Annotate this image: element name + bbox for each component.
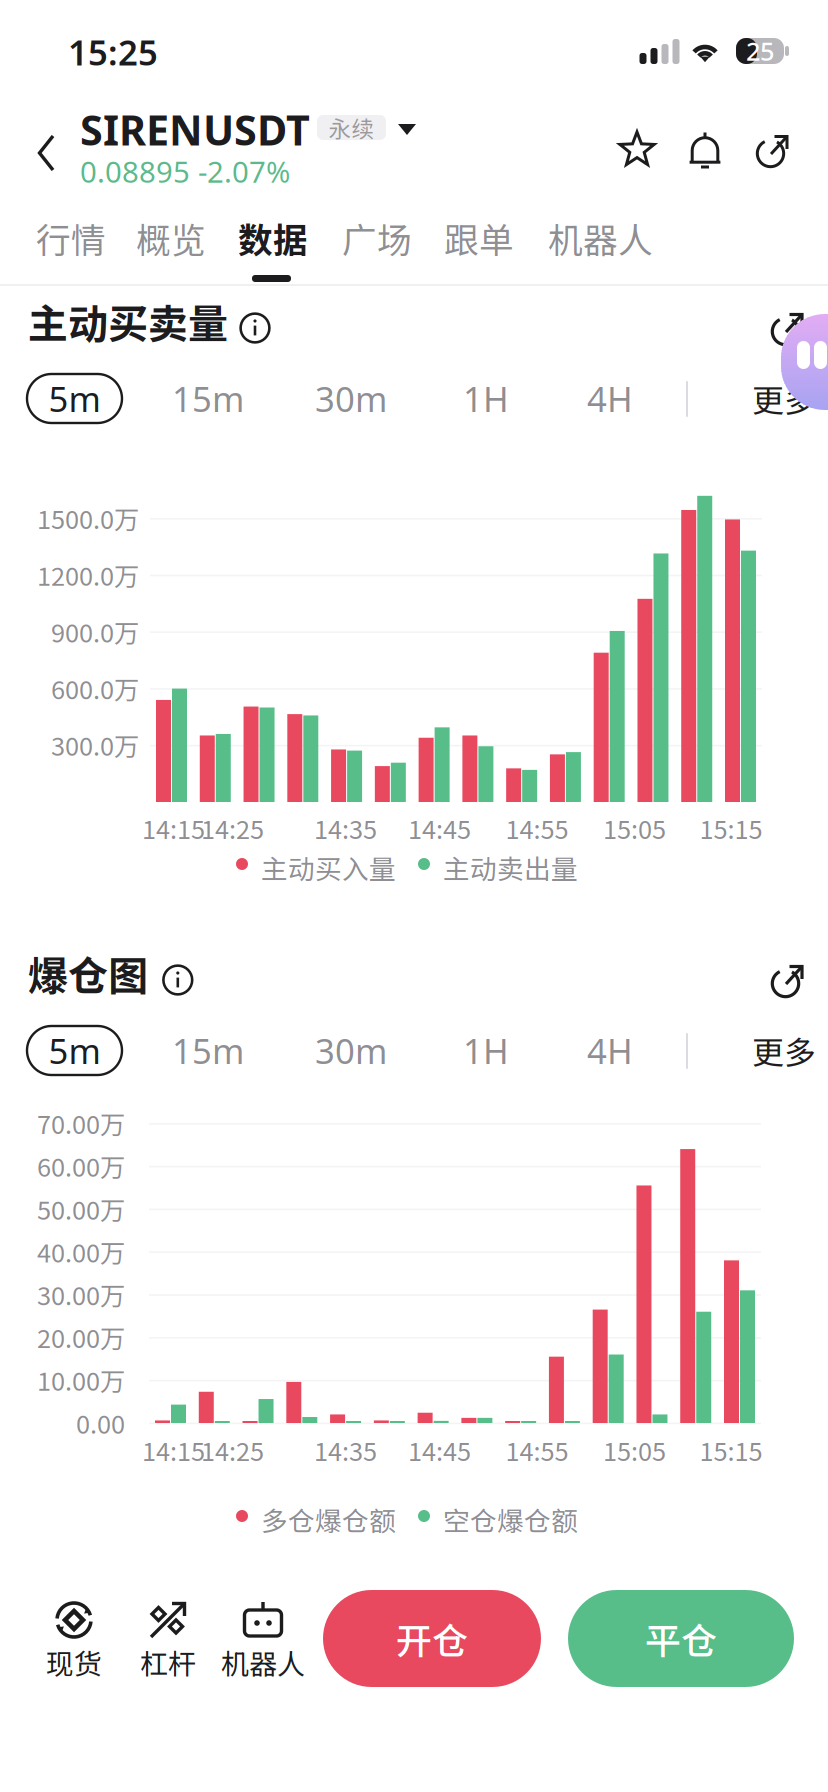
staticText: 1200.0万: [37, 556, 139, 593]
button[interactable]: 杠杆: [118, 1598, 218, 1690]
staticText: 机器人: [221, 1642, 305, 1682]
staticText: 300.0万: [51, 726, 139, 763]
button[interactable]: Open chart full screen: [760, 300, 816, 356]
staticText: 30m: [315, 1027, 387, 1073]
button[interactable]: Add to favorites: [605, 118, 669, 182]
staticText: 数据: [238, 213, 308, 263]
button[interactable]: 广场: [334, 203, 420, 273]
button[interactable]: 平仓: [568, 1590, 794, 1687]
staticText: 主动买入量: [261, 848, 396, 887]
button[interactable]: 行情: [28, 203, 114, 273]
staticText: 30m: [315, 375, 387, 421]
staticText: 主动卖出量: [443, 848, 578, 887]
staticText: 爆仓图: [28, 944, 148, 1002]
staticText: 15:15: [699, 1432, 762, 1468]
staticText: 30.00万: [37, 1276, 125, 1313]
button[interactable]: Switch contract type: [392, 112, 422, 146]
staticText: 1500.0万: [37, 500, 139, 536]
staticText: 20.00万: [37, 1319, 125, 1355]
staticText: 1H: [463, 1027, 509, 1073]
button[interactable]: 机器人: [540, 203, 661, 273]
button[interactable]: 更多: [740, 1026, 828, 1075]
staticText: 5m: [48, 1027, 100, 1073]
staticText: 机器人: [548, 213, 653, 263]
button[interactable]: 永续: [317, 115, 386, 140]
staticText: 15:05: [603, 1432, 666, 1468]
staticText: 25: [746, 34, 774, 68]
staticText: 10.00万: [37, 1361, 125, 1398]
staticText: 杠杆: [140, 1642, 196, 1682]
staticText: 600.0万: [51, 670, 139, 706]
button[interactable]: 30m: [296, 1026, 406, 1075]
staticText: 14:45: [408, 810, 471, 846]
button[interactable]: 开仓: [323, 1590, 541, 1687]
button[interactable]: 数据: [230, 203, 316, 273]
button[interactable]: Back: [15, 117, 77, 189]
button[interactable]: Share: [741, 118, 805, 182]
staticText: 现货: [46, 1642, 102, 1682]
staticText: 广场: [342, 213, 412, 263]
staticText: 14:15: [142, 1432, 205, 1468]
staticText: 平仓: [645, 1612, 717, 1664]
button[interactable]: Price alerts: [673, 118, 737, 182]
button[interactable]: 机器人: [208, 1598, 318, 1690]
staticText: 15:05: [603, 810, 666, 846]
staticText: 14:35: [314, 810, 377, 846]
staticText: 70.00万: [37, 1105, 125, 1141]
staticText: 15m: [172, 1027, 244, 1073]
staticText: 行情: [36, 213, 106, 263]
staticText: 5m: [48, 375, 100, 421]
button[interactable]: 1H: [431, 1026, 541, 1075]
button[interactable]: 5m: [27, 1026, 122, 1075]
staticText: 0.00: [76, 1404, 125, 1441]
staticText: 14:55: [505, 810, 568, 846]
staticText: 概览: [136, 213, 206, 263]
staticText: 14:15: [142, 810, 205, 846]
button[interactable]: 30m: [296, 374, 406, 423]
staticText: 14:25: [201, 1432, 264, 1468]
staticText: SIRENUSDT: [80, 102, 310, 157]
staticText: 4H: [587, 375, 633, 421]
button[interactable]: 4H: [555, 374, 665, 423]
button[interactable]: AI assistant: [781, 314, 828, 410]
staticText: 0.08895 -2.07%: [80, 152, 290, 191]
button[interactable]: 跟单: [436, 203, 522, 273]
staticText: 14:55: [505, 1432, 568, 1468]
staticText: 1H: [463, 375, 509, 421]
staticText: 900.0万: [51, 613, 139, 650]
button[interactable]: 5m: [27, 374, 122, 423]
button[interactable]: 现货: [24, 1598, 124, 1690]
staticText: 永续: [328, 111, 374, 144]
staticText: 跟单: [444, 213, 514, 263]
staticText: 4H: [587, 1027, 633, 1073]
staticText: 15:15: [699, 810, 762, 846]
staticText: 14:45: [408, 1432, 471, 1468]
staticText: 15m: [172, 375, 244, 421]
staticText: 14:25: [201, 810, 264, 846]
button[interactable]: 1H: [431, 374, 541, 423]
button[interactable]: 15m: [153, 374, 263, 423]
button[interactable]: 15m: [153, 1026, 263, 1075]
staticText: 14:35: [314, 1432, 377, 1468]
staticText: 更多: [752, 1027, 816, 1074]
button[interactable]: Open chart full screen: [760, 952, 816, 1008]
staticText: 40.00万: [37, 1233, 125, 1270]
staticText: 开仓: [396, 1612, 468, 1664]
staticText: 空仓爆仓额: [443, 1500, 578, 1539]
button[interactable]: 概览: [128, 203, 214, 273]
button[interactable]: 4H: [555, 1026, 665, 1075]
staticText: 更多: [752, 375, 816, 422]
staticText: 主动买卖量: [28, 292, 228, 350]
staticText: 60.00万: [37, 1147, 125, 1184]
staticText: 50.00万: [37, 1190, 125, 1227]
button[interactable]: 更多: [740, 374, 828, 423]
staticText: 多仓爆仓额: [261, 1500, 396, 1539]
staticText: 15:25: [68, 29, 158, 75]
